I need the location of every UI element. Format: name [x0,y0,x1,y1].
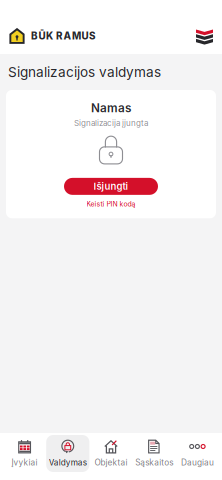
button[interactable]: Daugiau [176,435,219,472]
staticText: Išjungti [93,181,128,192]
staticText: Objektai [94,457,127,467]
staticText: Signalizacijos valdymas [8,64,161,80]
staticText: Valdymas [49,457,87,467]
staticText: Signalizacija įjungta [74,118,148,128]
button[interactable]: Valdymas [46,435,89,472]
button[interactable]: Išjungti [64,178,158,195]
staticText: Sąskaitos [135,457,173,467]
button[interactable]: Keisti PIN kodą [80,197,141,211]
staticText: Keisti PIN kodą [86,200,135,208]
button[interactable]: Sąskaitos [133,435,176,472]
staticText: Daugiau [181,457,214,467]
staticText: Įvykiai [12,457,38,467]
staticText: BŪK RAMUS [31,30,96,42]
button[interactable]: Įvykiai [3,435,46,472]
staticText: Namas [91,101,131,115]
button[interactable]: Objektai [89,435,133,472]
